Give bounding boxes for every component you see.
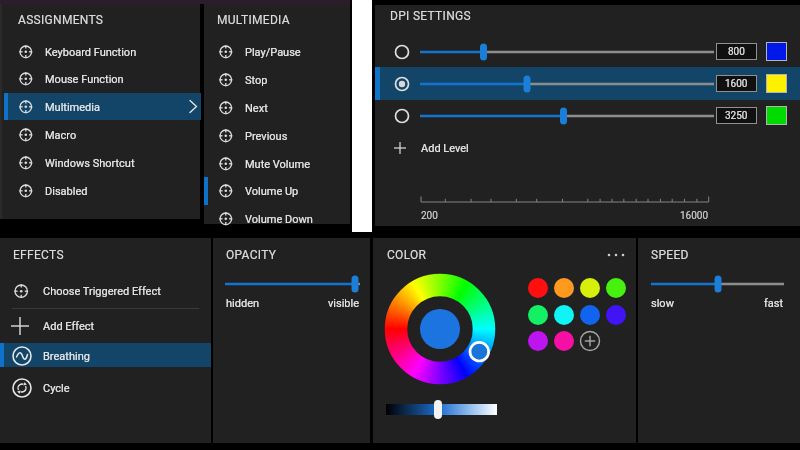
button[interactable] bbox=[0, 343, 211, 367]
staticText: 3250 bbox=[725, 110, 748, 122]
button[interactable] bbox=[225, 272, 360, 294]
staticText: Macro bbox=[45, 129, 77, 142]
staticText: SPEED bbox=[651, 248, 689, 262]
staticText: Stop bbox=[245, 74, 268, 87]
button[interactable] bbox=[0, 277, 211, 305]
button[interactable] bbox=[580, 278, 600, 298]
button[interactable] bbox=[204, 206, 350, 233]
button[interactable] bbox=[2, 93, 200, 120]
button[interactable] bbox=[580, 331, 600, 351]
button[interactable] bbox=[204, 39, 350, 66]
staticText: 16000 bbox=[680, 210, 709, 222]
button[interactable] bbox=[390, 137, 500, 159]
button[interactable] bbox=[375, 67, 800, 100]
staticText: Mute Volume bbox=[245, 158, 311, 171]
button[interactable] bbox=[204, 66, 350, 93]
staticText: Breathing bbox=[43, 350, 90, 363]
staticText: Add Effect bbox=[43, 320, 95, 333]
button[interactable] bbox=[204, 178, 350, 205]
button[interactable] bbox=[651, 272, 784, 294]
button[interactable] bbox=[386, 398, 498, 422]
staticText: Cycle bbox=[43, 382, 70, 395]
staticText: Volume Down bbox=[245, 213, 313, 226]
button[interactable] bbox=[528, 305, 548, 325]
staticText: Volume Up bbox=[245, 185, 299, 198]
button[interactable] bbox=[766, 74, 787, 93]
staticText: Choose Triggered Effect bbox=[43, 285, 161, 298]
button[interactable] bbox=[204, 150, 350, 177]
staticText: Next bbox=[245, 102, 268, 115]
button[interactable] bbox=[528, 278, 548, 298]
staticText: 800 bbox=[728, 46, 745, 58]
staticText: ASSIGNMENTS bbox=[18, 13, 104, 27]
staticText: Mouse Function bbox=[45, 73, 124, 86]
staticText: Play/Pause bbox=[245, 46, 301, 59]
staticText: hidden bbox=[226, 297, 260, 310]
button[interactable] bbox=[580, 305, 600, 325]
staticText: Previous bbox=[245, 130, 288, 143]
staticText: DPI SETTINGS bbox=[390, 9, 471, 23]
button[interactable] bbox=[2, 39, 200, 66]
staticText: visible bbox=[328, 297, 360, 310]
button[interactable] bbox=[606, 278, 626, 298]
button[interactable] bbox=[394, 44, 410, 60]
staticText: MULTIMEDIA bbox=[217, 13, 290, 27]
staticText: Keyboard Function bbox=[45, 46, 137, 59]
staticText: 1600 bbox=[725, 78, 748, 90]
button[interactable] bbox=[384, 273, 496, 385]
button[interactable] bbox=[766, 106, 787, 125]
button[interactable] bbox=[2, 66, 200, 93]
button[interactable] bbox=[554, 331, 574, 351]
staticText: COLOR bbox=[387, 248, 427, 262]
button[interactable] bbox=[204, 94, 350, 121]
staticText: Add Level bbox=[421, 142, 469, 155]
staticText: Windows Shortcut bbox=[45, 157, 135, 170]
button[interactable] bbox=[394, 108, 410, 124]
button[interactable] bbox=[2, 178, 200, 205]
button[interactable] bbox=[605, 250, 629, 260]
staticText: Disabled bbox=[45, 185, 88, 198]
button[interactable] bbox=[528, 331, 548, 351]
button[interactable] bbox=[2, 150, 200, 177]
staticText: fast bbox=[764, 297, 784, 310]
button[interactable] bbox=[766, 42, 787, 61]
button[interactable] bbox=[394, 76, 410, 92]
button[interactable] bbox=[4, 93, 201, 120]
button[interactable] bbox=[204, 122, 350, 149]
staticText: OPACITY bbox=[226, 248, 277, 262]
staticText: EFFECTS bbox=[13, 248, 64, 262]
button[interactable] bbox=[606, 305, 626, 325]
staticText: slow bbox=[651, 297, 674, 310]
button[interactable] bbox=[2, 122, 200, 149]
staticText: Multimedia bbox=[45, 101, 100, 114]
button[interactable] bbox=[554, 305, 574, 325]
button[interactable] bbox=[0, 312, 211, 340]
button[interactable] bbox=[554, 278, 574, 298]
button[interactable] bbox=[0, 374, 211, 402]
staticText: 200 bbox=[421, 210, 438, 222]
